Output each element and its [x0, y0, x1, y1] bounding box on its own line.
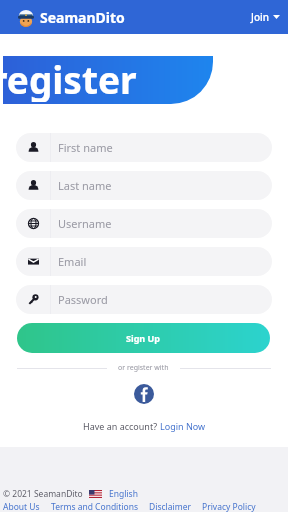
button[interactable]: Login Now — [160, 420, 206, 432]
button[interactable]: Sign Up — [17, 323, 270, 353]
button[interactable]: About Us — [3, 501, 40, 512]
staticText: Password — [58, 292, 108, 307]
button[interactable]: Disclaimer — [149, 501, 191, 512]
button[interactable]: Terms and Conditions — [51, 501, 139, 512]
button[interactable]: English — [109, 488, 138, 500]
button[interactable]: Join — [247, 5, 284, 29]
staticText: register — [3, 56, 137, 102]
staticText: First name — [58, 140, 113, 155]
button[interactable]: Register with Facebook — [134, 384, 154, 404]
button[interactable]: Password — [16, 285, 272, 314]
staticText: Last name — [58, 178, 112, 193]
button[interactable]: SeamanDito — [17, 8, 125, 27]
staticText: Email — [58, 254, 87, 269]
staticText: Sign Up — [126, 332, 161, 344]
staticText: © 2021 SeamanDito — [3, 488, 83, 500]
button[interactable]: Email — [16, 247, 272, 276]
staticText: SeamanDito — [40, 8, 125, 27]
staticText: Have an account? — [83, 420, 160, 432]
button[interactable]: Username — [16, 209, 272, 238]
button[interactable]: Last name — [16, 171, 272, 200]
staticText: or register with — [118, 363, 169, 373]
button[interactable]: Privacy Policy — [202, 501, 256, 512]
button[interactable]: First name — [16, 133, 272, 162]
staticText: Username — [58, 216, 112, 231]
staticText: Join — [251, 10, 269, 24]
